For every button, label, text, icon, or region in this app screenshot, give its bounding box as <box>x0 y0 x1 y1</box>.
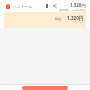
staticText: 通常価格 1,320円 (税込) <box>59 8 86 11</box>
staticText: 1,320円 <box>67 15 84 21</box>
staticText: 1,320円 <box>70 2 86 8</box>
staticText: 税込 <box>55 17 62 21</box>
button[interactable]: Share <box>52 2 58 10</box>
button[interactable]: Brand logo <box>6 4 10 9</box>
button[interactable]: More options <box>44 2 50 10</box>
button[interactable]: Add to cart <box>22 86 68 90</box>
staticText: ベストール <box>13 4 33 9</box>
